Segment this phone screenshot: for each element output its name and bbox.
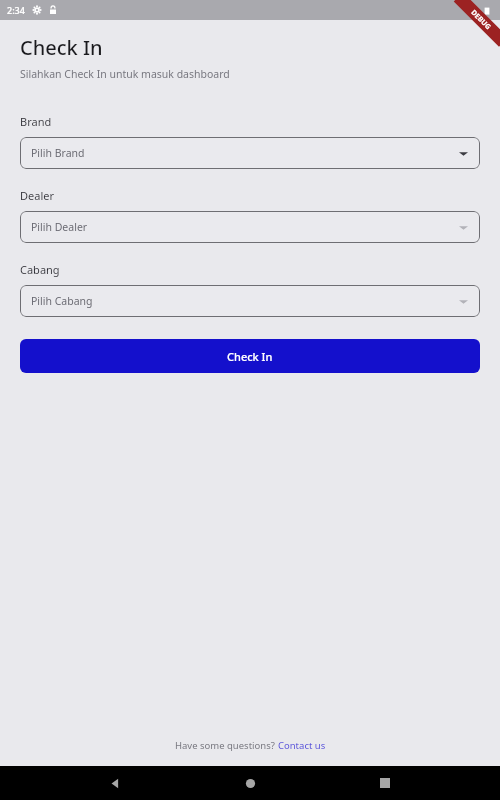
staticText: Check In (227, 349, 273, 364)
staticText: Dealer (20, 188, 54, 203)
staticText: Contact us (278, 739, 326, 752)
staticText: DEBUG (469, 8, 493, 32)
staticText: Pilih Brand (31, 146, 459, 160)
staticText: Pilih Cabang (31, 294, 459, 308)
staticText: Have some questions? (175, 739, 278, 752)
staticText: Pilih Dealer (31, 220, 459, 234)
staticText: Check In (20, 34, 103, 61)
button[interactable]: Recent apps (365, 766, 405, 800)
staticText: Silahkan Check In untuk masuk dashboard (20, 67, 230, 81)
button[interactable]: Home (230, 766, 270, 800)
button[interactable]: Pilih Cabang (20, 285, 480, 317)
button[interactable]: Contact us (278, 739, 326, 752)
button[interactable]: Pilih Dealer (20, 211, 480, 243)
staticText: Brand (20, 114, 52, 129)
button[interactable]: Back (95, 766, 135, 800)
button[interactable]: Check In (20, 339, 480, 373)
staticText: Cabang (20, 262, 60, 277)
staticText: 2:34 (7, 4, 25, 16)
button[interactable]: Pilih Brand (20, 137, 480, 169)
